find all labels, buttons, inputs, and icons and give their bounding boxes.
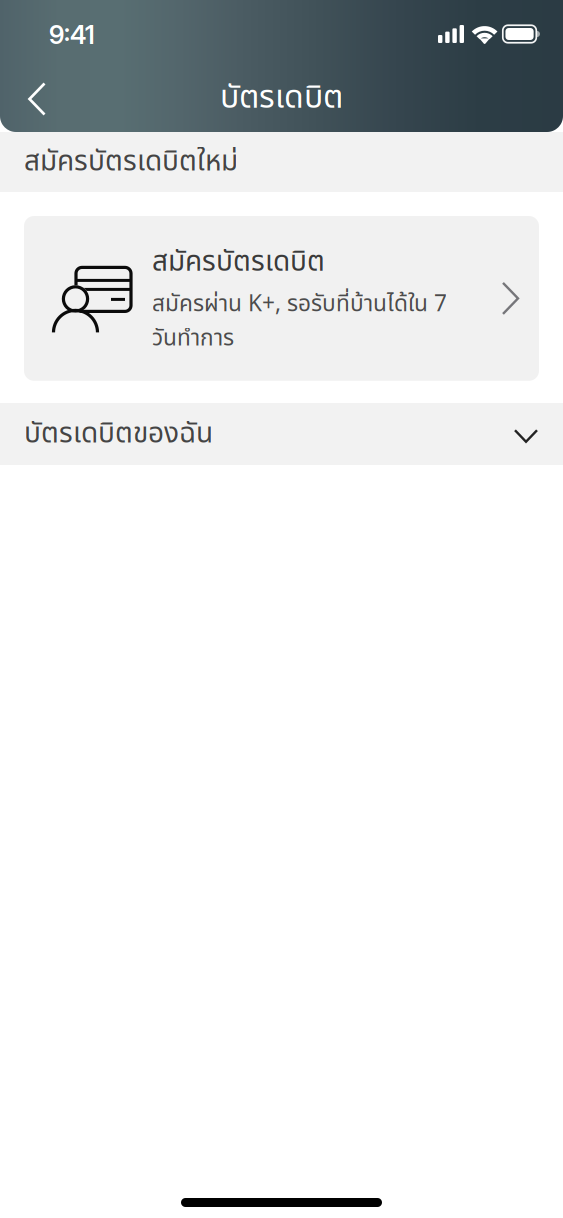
button[interactable]: บัตรเดบิตของฉัน — [0, 403, 563, 465]
staticText: สมัครบัตรเดบิต — [152, 241, 325, 283]
staticText: บัตรเดบิตของฉัน — [24, 413, 213, 455]
staticText: สมัครผ่าน K+, รอรับที่บ้านได้ใน 7 วันทำก… — [152, 287, 447, 356]
button[interactable]: Back — [8, 67, 66, 125]
staticText: สมัครบัตรเดบิตใหม่ — [24, 141, 238, 183]
button[interactable]: สมัครบัตรเดบิต — [24, 216, 539, 381]
staticText: 9:41 — [49, 19, 95, 50]
staticText: บัตรเดบิต — [220, 74, 343, 122]
